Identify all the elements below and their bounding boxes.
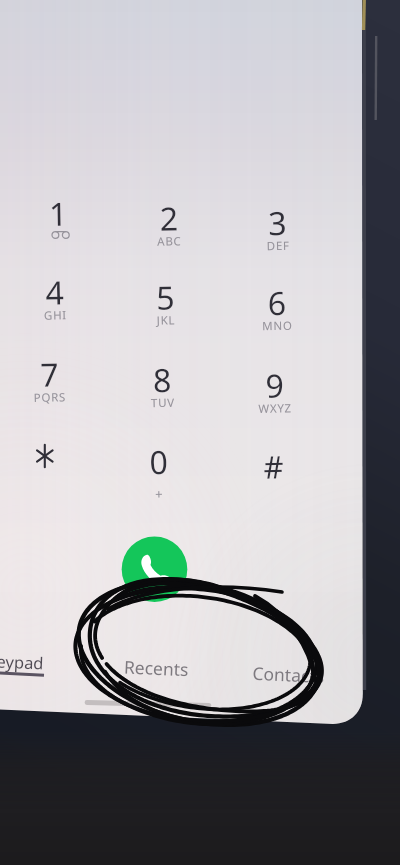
button[interactable]: Call bbox=[121, 537, 189, 605]
